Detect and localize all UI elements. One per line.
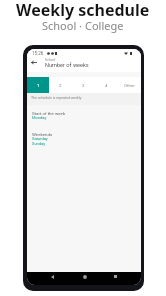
staticText: Monday [32, 115, 47, 120]
button[interactable]: 1 [27, 77, 49, 93]
button[interactable]: Recent apps [110, 272, 121, 281]
staticText: 2 [59, 83, 62, 88]
button[interactable]: Start of the week [27, 110, 141, 126]
staticText: Other [124, 83, 135, 88]
button[interactable]: Weekends [27, 132, 141, 154]
staticText: 1 [37, 83, 40, 88]
button[interactable]: 2 [49, 77, 72, 93]
staticText: Number of weeks [45, 62, 89, 69]
staticText: Saturday [32, 136, 48, 141]
button[interactable]: Navigate up [29, 57, 39, 67]
button[interactable]: Back [47, 272, 58, 281]
staticText: 4 [105, 83, 108, 88]
button[interactable]: 3 [72, 77, 95, 93]
staticText: Weekends [32, 132, 53, 137]
staticText: School · College [42, 18, 124, 33]
staticText: 15:26 [32, 51, 44, 56]
staticText: 3 [82, 83, 85, 88]
staticText: Weekly schedule [16, 0, 150, 21]
staticText: The schedule is repeated weekly [31, 96, 82, 100]
button[interactable]: Home [79, 272, 90, 281]
staticText: School [45, 58, 56, 62]
staticText: Sunday [32, 141, 46, 146]
button[interactable]: 4 [95, 77, 118, 93]
button[interactable]: Other [118, 77, 141, 93]
staticText: Start of the week [32, 111, 66, 116]
